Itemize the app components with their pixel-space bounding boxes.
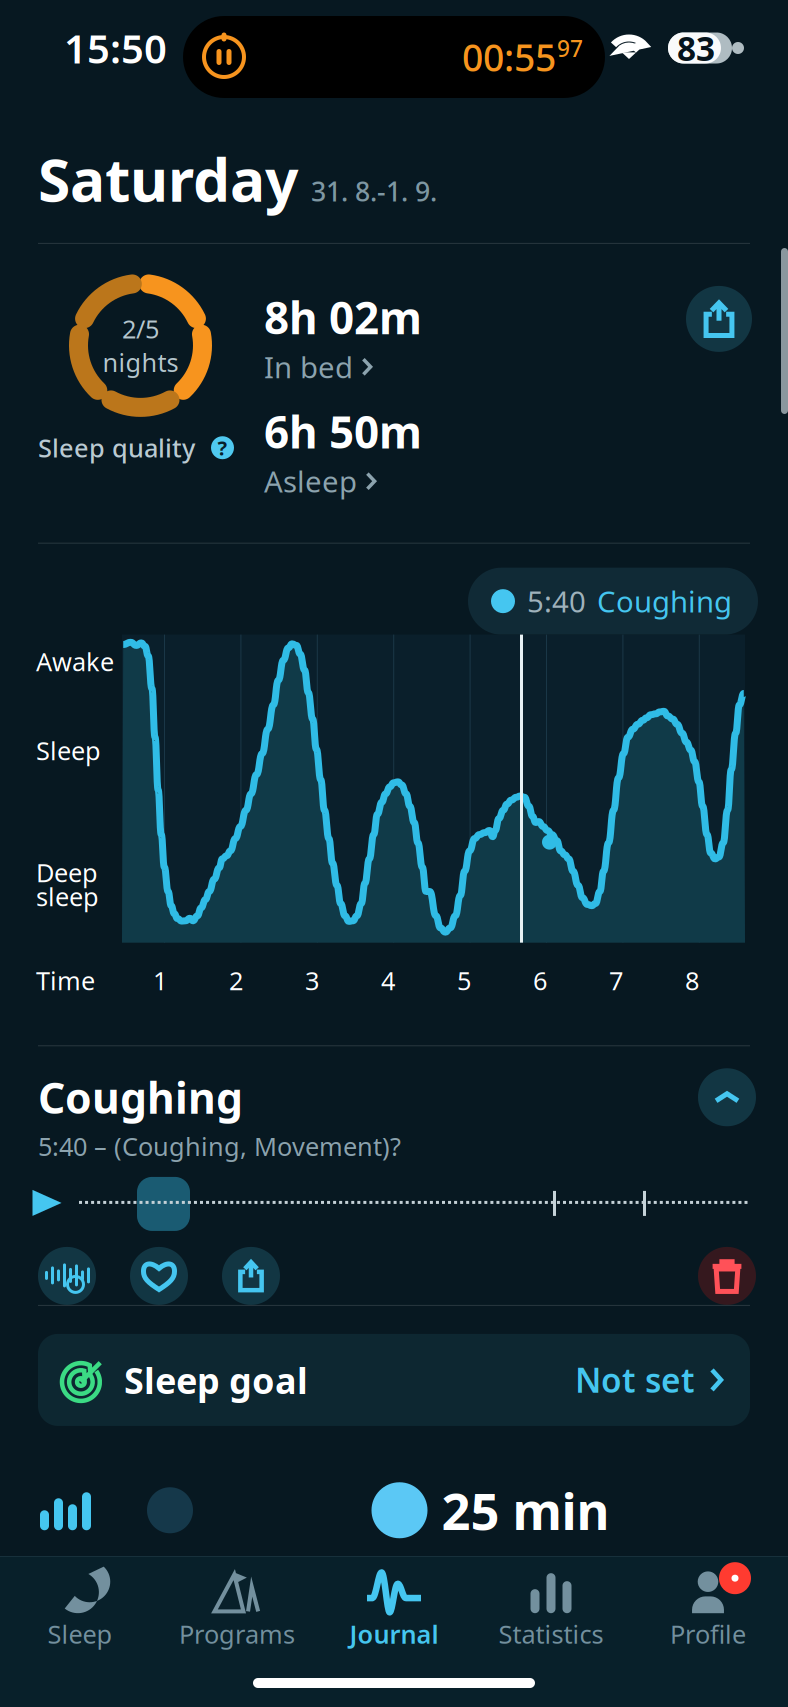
button[interactable]: Programs [158, 1567, 315, 1655]
button[interactable]: Sleep quality info [209, 434, 236, 461]
staticText: 8h 02m [264, 288, 422, 346]
button[interactable]: Favorite [130, 1247, 188, 1305]
staticText: Coughing [38, 1069, 243, 1126]
button[interactable]: Journal [315, 1567, 472, 1655]
staticText: Asleep [264, 462, 357, 501]
staticText: 6h 50m [264, 402, 422, 461]
button[interactable]: Share [686, 286, 752, 352]
staticText: 5:40 [527, 582, 586, 621]
staticText: 31. 8.-1. 9. [311, 173, 437, 209]
button[interactable]: Profile [629, 1567, 786, 1655]
staticText: Sleep quality [38, 431, 195, 464]
staticText: 1 [153, 964, 167, 997]
staticText: nights [102, 345, 178, 379]
staticText: 2/5 [122, 312, 159, 345]
staticText: 5:40 – (Coughing, Movement)? [38, 1129, 401, 1163]
staticText: 00:55 [462, 32, 556, 82]
button[interactable]: Play [21, 1175, 73, 1231]
button[interactable]: Share recording [222, 1247, 280, 1305]
staticText: 15:50 [64, 21, 167, 74]
staticText: In bed [264, 347, 353, 386]
staticText: 97 [557, 33, 583, 63]
staticText: Awake [36, 645, 114, 678]
staticText: 6 [533, 964, 547, 997]
staticText: Not set [575, 1358, 695, 1402]
staticText: 5 [457, 964, 471, 997]
staticText: 83 [677, 26, 715, 70]
staticText: Time [36, 964, 95, 997]
staticText: Sleep [47, 1617, 112, 1651]
button[interactable]: Sleep goal [38, 1334, 750, 1426]
button[interactable]: 6h 50m [264, 402, 594, 501]
button[interactable]: Statistics [472, 1567, 629, 1655]
button[interactable]: Sleep [1, 1567, 158, 1655]
staticText: 7 [609, 964, 623, 997]
staticText: Sleep [36, 734, 101, 767]
staticText: 8 [685, 964, 699, 997]
staticText: 3 [305, 964, 319, 997]
staticText: Profile [670, 1617, 746, 1651]
staticText: ? [217, 434, 227, 461]
staticText: Journal [349, 1617, 438, 1651]
staticText: sleep [36, 880, 99, 913]
staticText: Deep [36, 856, 98, 889]
button[interactable]: Analyze sound [38, 1247, 96, 1305]
button[interactable]: Collapse [698, 1068, 756, 1126]
staticText: Statistics [498, 1617, 603, 1651]
staticText: Coughing [597, 582, 732, 621]
button[interactable]: 8h 02m [264, 288, 594, 386]
staticText: 4 [381, 964, 395, 997]
button[interactable]: Delete [698, 1247, 756, 1305]
staticText: Sleep goal [124, 1356, 308, 1404]
staticText: 2 [229, 964, 243, 997]
staticText: Saturday [38, 140, 298, 218]
staticText: Programs [179, 1617, 295, 1651]
staticText: 25 min [441, 1477, 609, 1544]
